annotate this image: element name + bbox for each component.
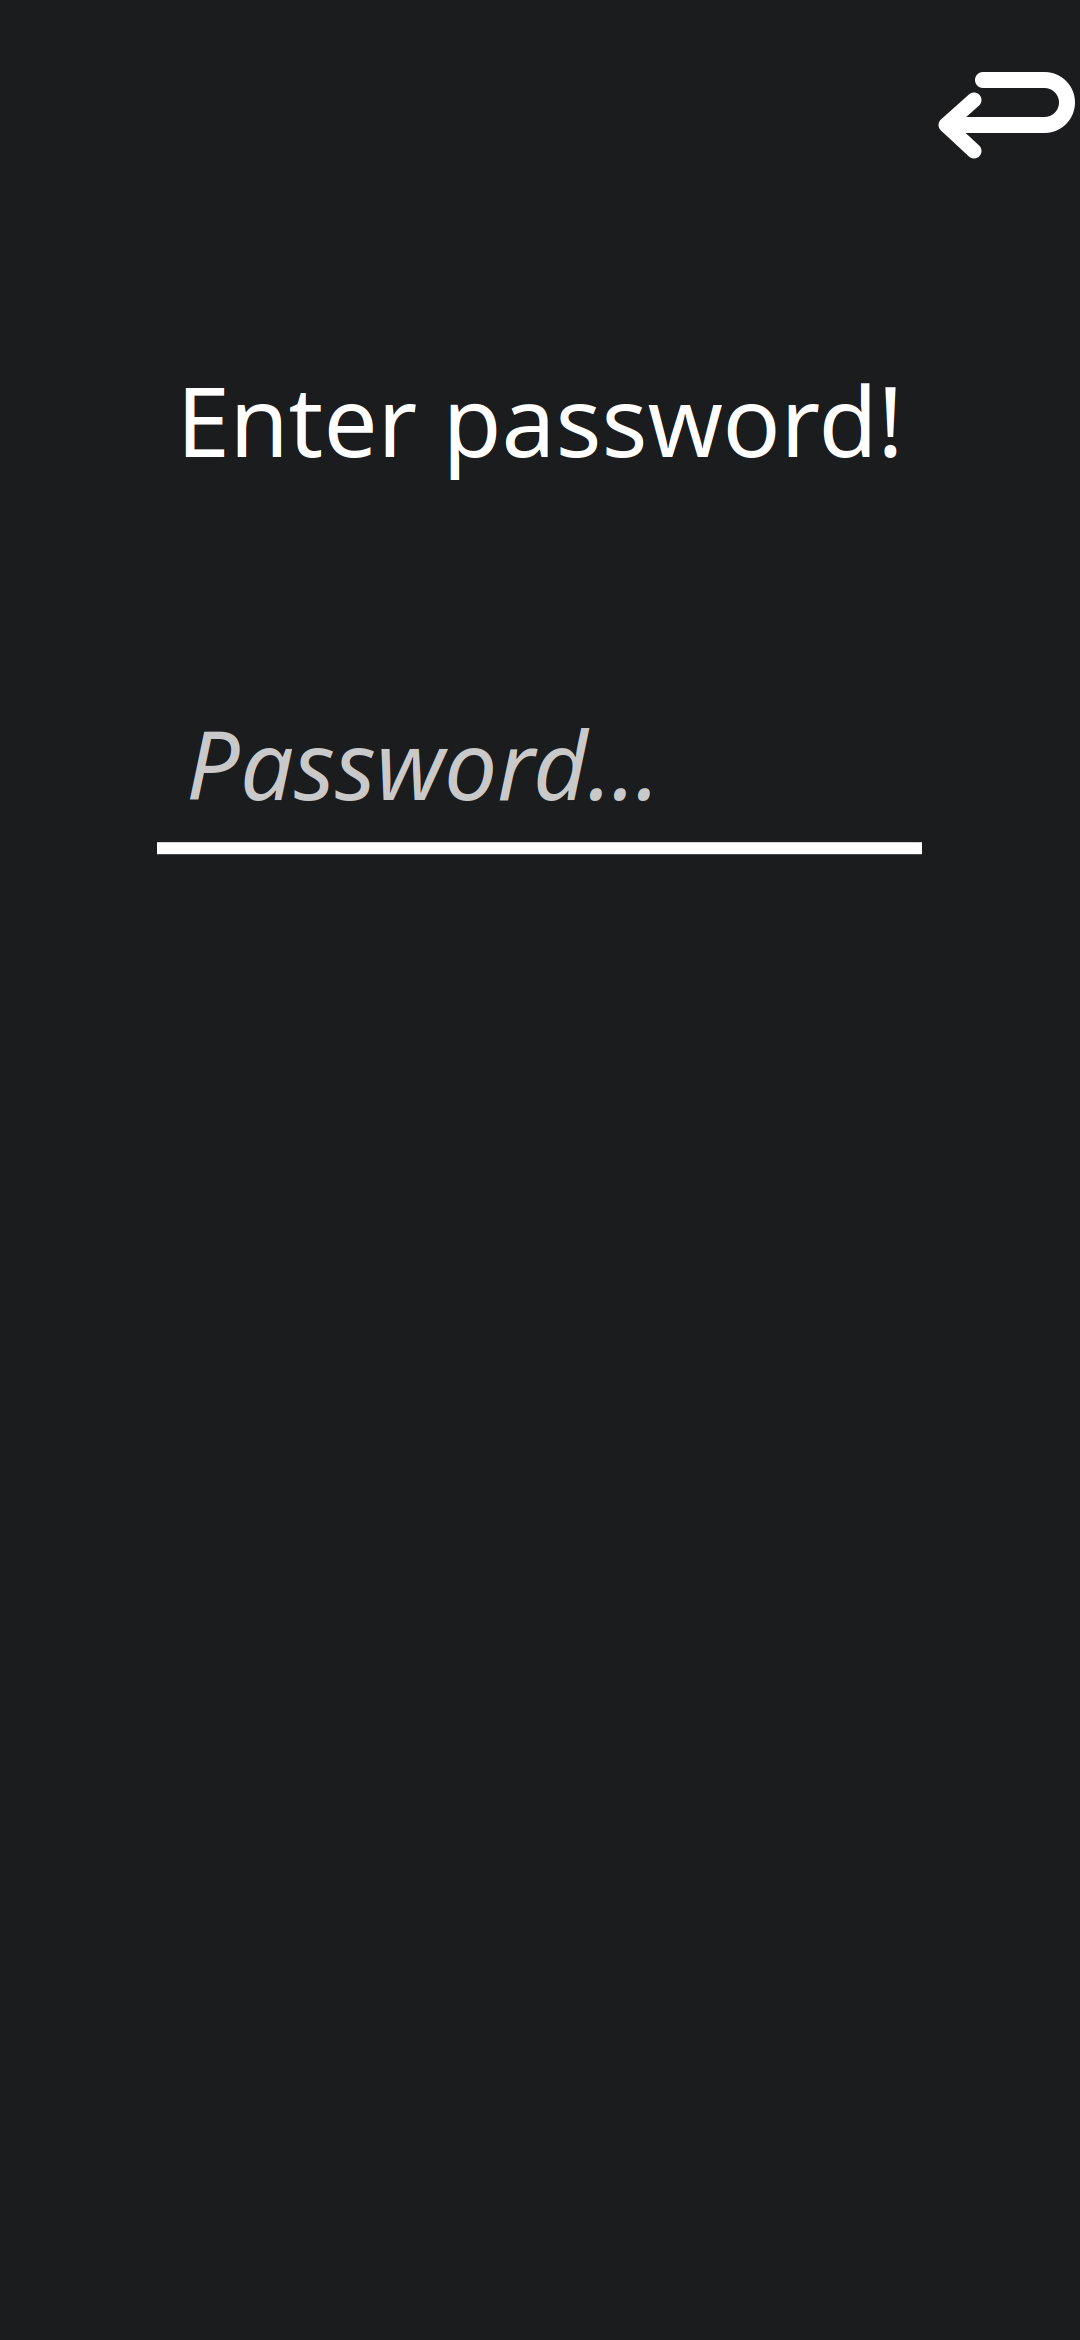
- button[interactable]: Password...: [157, 700, 922, 854]
- button[interactable]: Back: [938, 72, 1075, 160]
- staticText: Enter password!: [176, 356, 903, 483]
- staticText: Password...: [186, 700, 660, 826]
